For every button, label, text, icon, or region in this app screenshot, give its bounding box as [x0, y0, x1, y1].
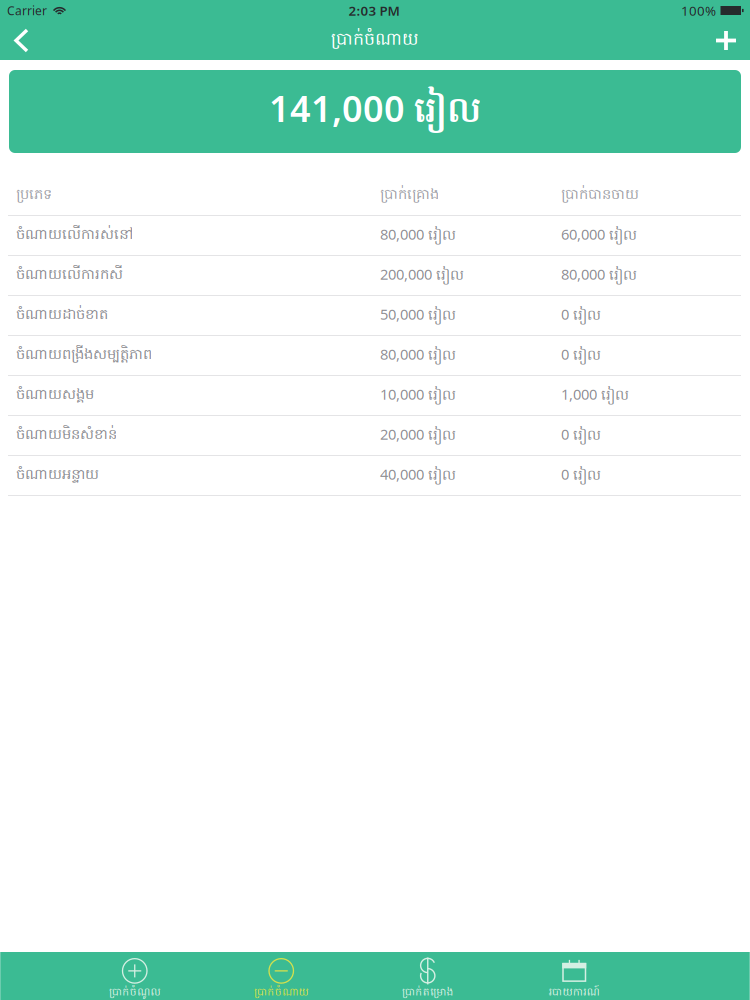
staticText: 0 រៀល	[561, 344, 601, 367]
staticText: ចំណាយលើការស់នៅ	[16, 225, 133, 246]
button[interactable]: Add	[696, 21, 750, 60]
staticText: ប្រាក់តម្រោង	[402, 985, 453, 1000]
staticText: ប្រាក់ចំណាយ	[254, 985, 308, 1000]
button[interactable]: ប្រាក់តម្រោង	[354, 952, 501, 1000]
staticText: 0 រៀល	[561, 304, 601, 327]
staticText: 40,000 រៀល	[380, 464, 456, 487]
staticText: ប្រាក់បានចាយ	[561, 185, 639, 206]
staticText: ចំណាយដាច់ខាត	[16, 305, 108, 326]
staticText: ប្រាក់ចំណាយ	[331, 28, 419, 53]
staticText: 10,000 រៀល	[380, 384, 456, 407]
button[interactable]: Back	[0, 21, 47, 60]
staticText: 100%	[681, 2, 716, 19]
staticText: ចំណាយសង្គម	[16, 385, 94, 406]
staticText: 141,000 រៀល	[269, 84, 481, 139]
staticText: ប្រាក់ចំណូល	[109, 985, 160, 1000]
staticText: ចំណាយមិនសំខាន់	[16, 425, 117, 446]
button[interactable]: ប្រាក់ចំណាយ	[208, 952, 354, 1000]
staticText: 80,000 រៀល	[561, 264, 637, 287]
staticText: 80,000 រៀល	[380, 224, 456, 247]
staticText: ចំណាយអន្ទាយ	[16, 465, 99, 486]
staticText: 200,000 រៀល	[380, 264, 464, 287]
staticText: 60,000 រៀល	[561, 224, 637, 247]
staticText: 0 រៀល	[561, 464, 601, 487]
staticText: ចំណាយពង្រីងសម្បត្តិភាព	[16, 345, 152, 366]
staticText: 80,000 រៀល	[380, 344, 456, 367]
staticText: 1,000 រៀល	[561, 384, 629, 407]
staticText: 0 រៀល	[561, 424, 601, 447]
staticText: 20,000 រៀល	[380, 424, 456, 447]
staticText: របាយការណ៍	[549, 985, 600, 1000]
staticText: ប្រភេទ	[16, 185, 52, 206]
button[interactable]: របាយការណ៍	[501, 952, 647, 1000]
staticText: 50,000 រៀល	[380, 304, 456, 327]
staticText: Carrier	[7, 2, 47, 18]
staticText: 2:03 PM	[348, 2, 399, 19]
staticText: ចំណាយលើការកសី	[16, 265, 123, 286]
button[interactable]: ប្រាក់ចំណូល	[61, 952, 208, 1000]
staticText: ប្រាក់គ្រោង	[380, 185, 439, 206]
